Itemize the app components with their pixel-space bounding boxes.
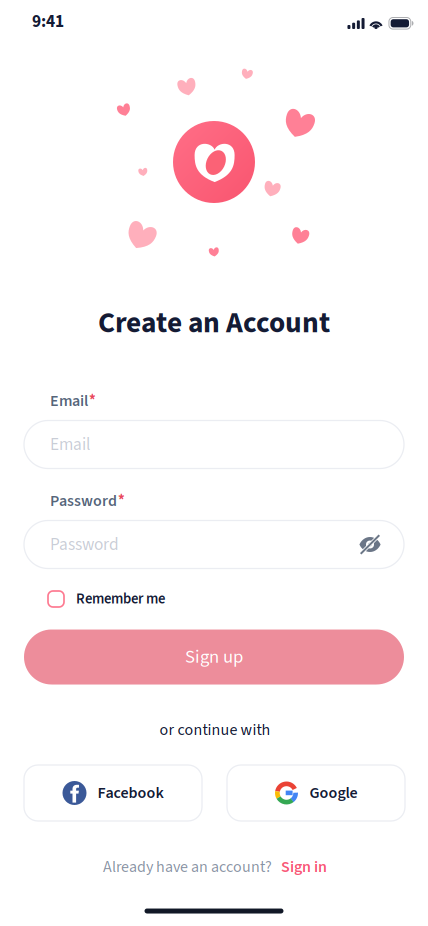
- staticText: Create an Account: [98, 302, 330, 344]
- staticText: Already have an account?: [103, 856, 272, 878]
- button[interactable]: Google: [227, 765, 405, 821]
- staticText: Email: [50, 390, 88, 412]
- staticText: Facebook: [97, 782, 163, 804]
- staticText: *: [89, 390, 96, 410]
- staticText: *: [118, 490, 125, 510]
- staticText: Password: [50, 532, 119, 557]
- button[interactable]: Facebook: [24, 765, 202, 821]
- staticText: Sign in: [281, 856, 327, 878]
- staticText: Google: [309, 782, 357, 804]
- staticText: Password: [50, 490, 117, 512]
- button[interactable]: Sign up: [24, 629, 404, 684]
- button[interactable]: Remember me: [48, 586, 208, 612]
- staticText: Sign up: [185, 644, 243, 670]
- staticText: Remember me: [76, 589, 165, 609]
- button[interactable]: Sign in: [281, 856, 327, 878]
- staticText: or continue with: [159, 719, 270, 741]
- staticText: Email: [50, 432, 90, 457]
- staticText: 9:41: [32, 9, 64, 34]
